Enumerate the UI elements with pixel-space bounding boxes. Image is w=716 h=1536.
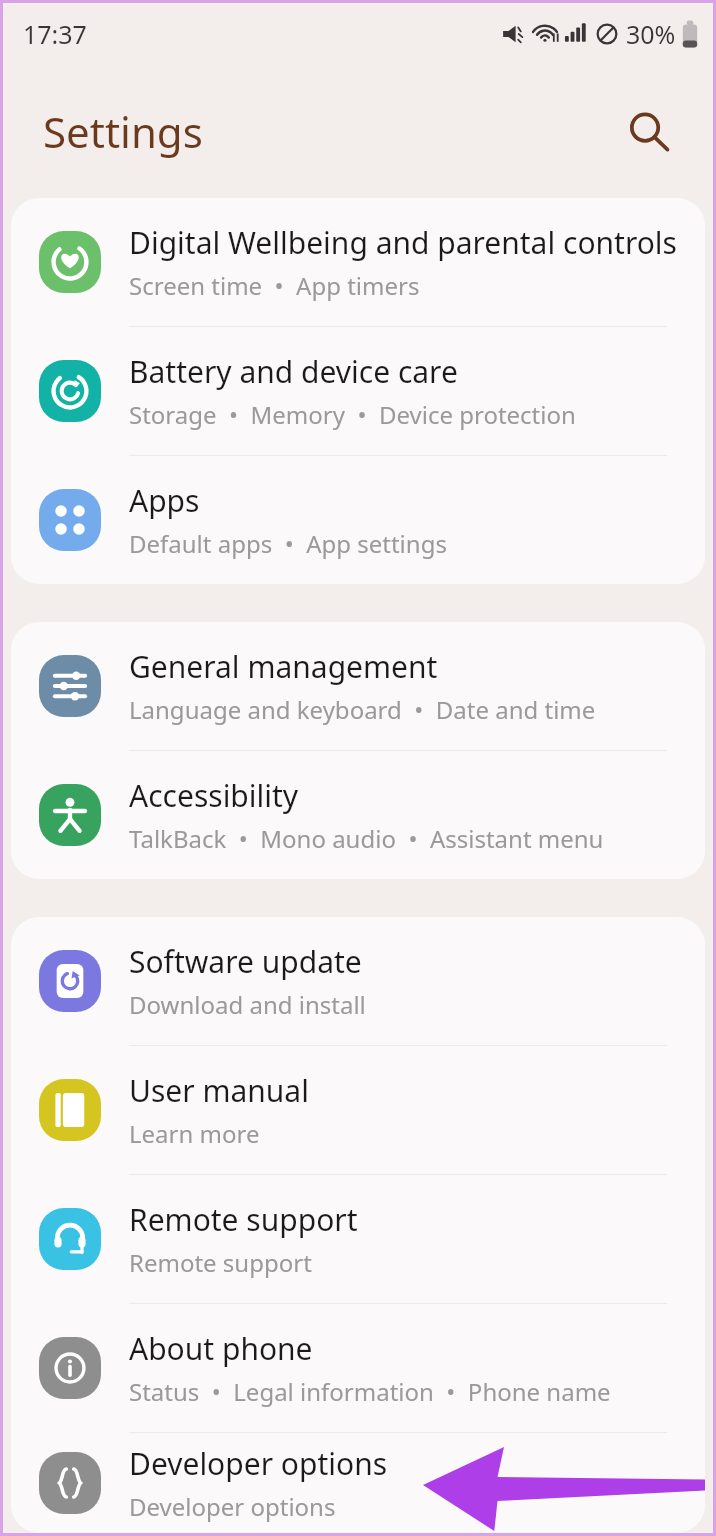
button[interactable]: Apps [11,456,705,584]
staticText: Remote support [129,1246,312,1279]
button[interactable]: Digital Wellbeing and parental controls [11,198,705,326]
button[interactable]: About phone [11,1304,705,1432]
staticText: Digital Wellbeing and parental controls [129,222,677,263]
button[interactable]: Remote support [11,1175,705,1303]
button[interactable]: Search [617,100,681,164]
staticText: Accessibility [129,775,299,816]
button[interactable]: Software update [11,917,705,1045]
button[interactable]: Developer options [11,1433,705,1533]
button[interactable]: Accessibility [11,751,705,879]
staticText: 30% [626,17,676,51]
staticText: Screen time • App timers [129,269,420,302]
staticText: Apps [129,480,200,521]
staticText: TalkBack • Mono audio • Assistant menu [129,822,604,855]
staticText: Learn more [129,1117,260,1150]
staticText: User manual [129,1070,309,1111]
staticText: Download and install [129,988,366,1021]
staticText: General management [129,646,438,687]
staticText: Developer options [129,1490,336,1523]
staticText: Settings [43,103,203,160]
staticText: About phone [129,1328,313,1369]
staticText: Language and keyboard • Date and time [129,693,596,726]
staticText: Remote support [129,1199,358,1240]
staticText: Software update [129,941,362,982]
button[interactable]: User manual [11,1046,705,1174]
staticText: Default apps • App settings [129,527,447,560]
button[interactable]: Battery and device care [11,327,705,455]
button[interactable]: General management [11,622,705,750]
staticText: Storage • Memory • Device protection [129,398,576,431]
staticText: Battery and device care [129,351,458,392]
staticText: 17:37 [23,17,87,51]
staticText: Status • Legal information • Phone name [129,1375,611,1408]
staticText: Developer options [129,1443,388,1484]
